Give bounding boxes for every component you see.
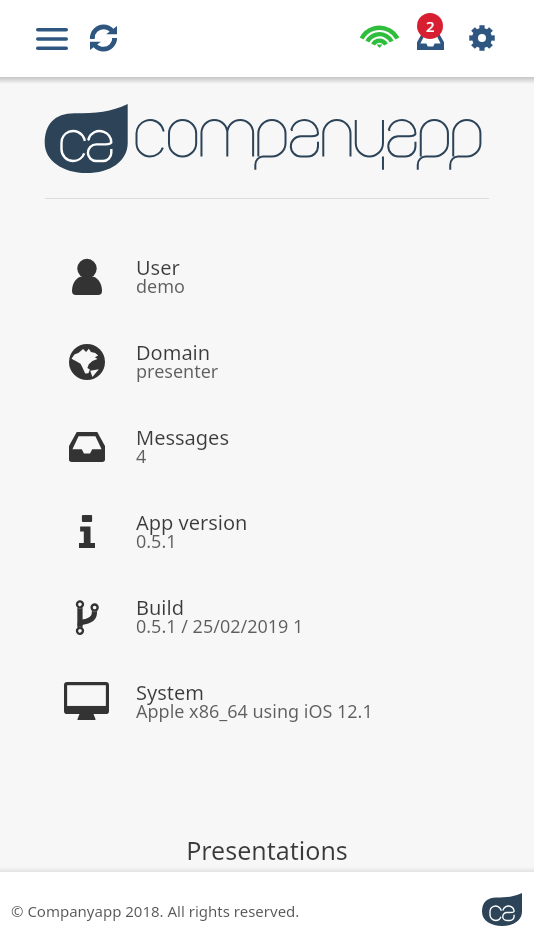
staticText: 0.5.1 / 25/02/2019 1: [136, 614, 304, 639]
staticText: App version: [136, 509, 248, 536]
staticText: Messages: [136, 424, 229, 451]
staticText: 4: [136, 444, 147, 469]
staticText: 0.5.1: [136, 529, 177, 554]
staticText: 2: [426, 16, 435, 36]
staticText: Apple x86_64 using iOS 12.1: [136, 699, 373, 724]
button[interactable]: Settings: [460, 16, 504, 60]
button[interactable]: Domain: [0, 319, 534, 404]
staticText: © Companyapp 2018. All rights reserved.: [11, 901, 300, 921]
staticText: Presentations: [0, 833, 534, 867]
button[interactable]: Menu: [30, 17, 74, 61]
button[interactable]: Build: [0, 574, 534, 659]
button[interactable]: User: [0, 234, 534, 319]
button[interactable]: Refresh: [81, 16, 125, 60]
button[interactable]: App version: [0, 489, 534, 574]
button[interactable]: Connection status: [355, 14, 399, 58]
button[interactable]: System: [0, 659, 534, 744]
staticText: System: [136, 679, 204, 706]
staticText: User: [136, 254, 180, 281]
staticText: Build: [136, 594, 184, 621]
staticText: Domain: [136, 339, 211, 366]
staticText: demo: [136, 274, 185, 299]
button[interactable]: Messages: [409, 8, 451, 56]
button[interactable]: Messages: [0, 404, 534, 489]
staticText: presenter: [136, 359, 219, 384]
